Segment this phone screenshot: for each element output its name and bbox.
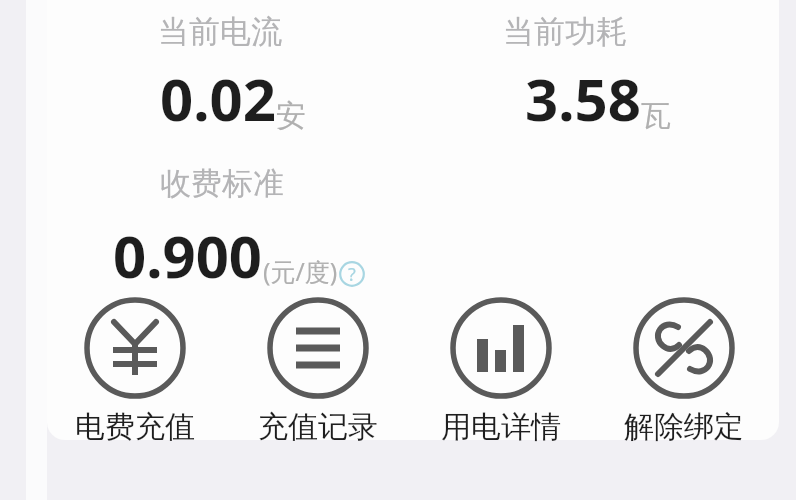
staticText: ? (348, 262, 356, 287)
staticText: 充值记录 (258, 408, 378, 446)
button[interactable]: 解除绑定 (604, 296, 764, 446)
staticText: 当前功耗 (503, 12, 627, 51)
button[interactable]: 充值记录 (238, 296, 398, 446)
staticText: (元/度) (263, 254, 338, 288)
staticText: 电费充值 (75, 408, 195, 446)
staticText: 收费标准 (160, 164, 284, 203)
staticText: 0.02 (160, 59, 276, 138)
button[interactable]: 收费标准说明 (339, 261, 365, 287)
staticText: 3.58 (525, 59, 641, 138)
button[interactable]: 用电详情 (421, 296, 581, 446)
staticText: 0.900 (113, 216, 263, 295)
staticText: 解除绑定 (624, 408, 744, 446)
staticText: 用电详情 (441, 408, 561, 446)
staticText: 安 (276, 97, 306, 135)
staticText: 瓦 (641, 97, 671, 135)
staticText: 当前电流 (158, 12, 282, 51)
button[interactable]: 电费充值 (55, 296, 215, 446)
